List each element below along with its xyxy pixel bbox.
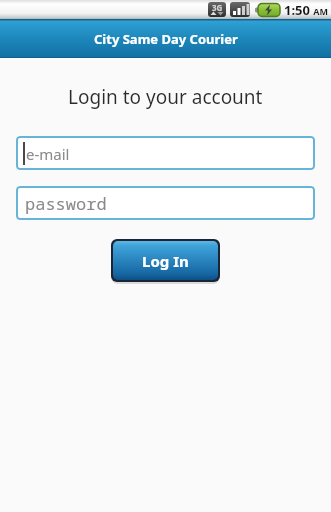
staticText: Login to your account — [68, 84, 263, 110]
button[interactable]: e-mail — [16, 136, 315, 170]
staticText: Log In — [142, 251, 189, 271]
staticText: e-mail — [26, 144, 70, 164]
staticText: password — [25, 192, 107, 215]
staticText: City Same Day Courier — [94, 30, 238, 48]
staticText: 1:50 AM — [284, 1, 329, 19]
button[interactable]: Log In — [113, 241, 218, 280]
button[interactable]: password — [16, 186, 315, 220]
staticText: 3G — [212, 2, 223, 13]
